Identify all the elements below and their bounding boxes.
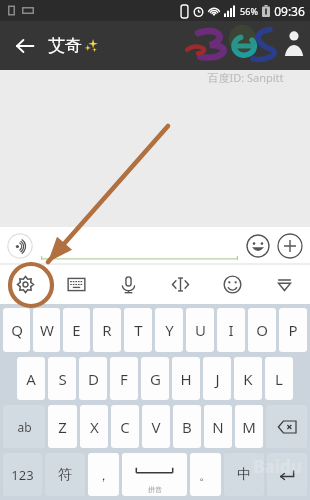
button[interactable]: G — [141, 357, 169, 400]
staticText: A — [26, 369, 36, 389]
staticText: 中 — [237, 466, 251, 484]
button[interactable]: C — [111, 405, 139, 448]
staticText: T — [134, 320, 143, 340]
button[interactable]: I — [217, 308, 245, 352]
staticText: Z — [58, 417, 67, 437]
staticText: F — [120, 369, 128, 389]
button[interactable]: E — [63, 308, 90, 352]
button[interactable]: Voice message — [7, 233, 33, 259]
staticText: W — [40, 320, 54, 340]
button[interactable]: 中 — [224, 453, 264, 496]
button[interactable]: V — [142, 405, 170, 448]
staticText: U — [195, 320, 206, 340]
button[interactable]: Keyboard — [51, 265, 102, 304]
button[interactable]: 123 — [3, 453, 42, 496]
button[interactable]: Emoji — [246, 234, 270, 258]
staticText: I — [228, 320, 234, 340]
button[interactable]: ， — [88, 453, 119, 496]
button[interactable]: J — [203, 357, 231, 400]
button[interactable]: Text edit — [154, 265, 206, 304]
staticText: 09:36 — [274, 3, 305, 19]
button[interactable]: More — [277, 233, 303, 259]
button[interactable]: B — [173, 405, 201, 448]
button[interactable]: O — [248, 308, 276, 352]
staticText: 艾奇 — [48, 35, 82, 56]
staticText: M — [242, 417, 256, 437]
staticText: B — [182, 417, 192, 437]
staticText: 符 — [58, 466, 72, 484]
button[interactable]: 。 — [190, 453, 221, 496]
staticText: 。 — [199, 467, 212, 483]
button[interactable]: Z — [48, 405, 77, 448]
button[interactable]: R — [93, 308, 121, 352]
staticText: J — [215, 369, 220, 389]
button[interactable]: P — [279, 308, 307, 352]
staticText: P — [288, 320, 298, 340]
staticText: ab — [17, 419, 32, 435]
button[interactable]: Voice input — [102, 265, 154, 304]
staticText: Y — [165, 320, 174, 340]
button[interactable]: M — [235, 405, 263, 448]
staticText: 拼音 — [148, 485, 162, 494]
button[interactable]: K — [234, 357, 262, 400]
button[interactable]: ab — [3, 405, 45, 448]
staticText: R — [102, 320, 112, 340]
staticText: 百度ID: Sanpitt — [207, 70, 284, 84]
staticText: C — [120, 417, 130, 437]
button[interactable]: Enter — [267, 453, 307, 496]
button[interactable]: A — [17, 357, 45, 400]
staticText: V — [151, 417, 161, 437]
staticText: S — [58, 369, 67, 389]
staticText: K — [243, 369, 253, 389]
staticText: D — [88, 369, 99, 389]
button[interactable]: D — [79, 357, 107, 400]
button[interactable]: U — [186, 308, 214, 352]
button[interactable]: Emoticons — [206, 265, 258, 304]
button[interactable]: F — [110, 357, 138, 400]
staticText: X — [90, 417, 99, 437]
button[interactable]: Back — [6, 27, 44, 65]
button[interactable]: S — [48, 357, 76, 400]
button[interactable]: Hide keyboard — [258, 265, 310, 304]
staticText: 123 — [11, 466, 34, 484]
button[interactable]: Settings — [0, 265, 51, 304]
staticText: L — [275, 369, 283, 389]
staticText: ， — [97, 467, 110, 483]
button[interactable]: N — [204, 405, 232, 448]
button[interactable]: L — [265, 357, 293, 400]
button[interactable]: H — [172, 357, 200, 400]
staticText: H — [180, 369, 192, 389]
button[interactable]: Space — [122, 453, 187, 496]
button[interactable]: Backspace — [266, 405, 307, 448]
staticText: O — [256, 320, 268, 340]
button[interactable]: T — [124, 308, 152, 352]
staticText: G — [150, 369, 161, 389]
button[interactable]: Q — [3, 308, 30, 352]
button[interactable] — [41, 227, 238, 265]
button[interactable]: Y — [155, 308, 183, 352]
button[interactable]: 符 — [45, 453, 85, 496]
staticText: E — [72, 320, 81, 340]
staticText: N — [212, 417, 224, 437]
staticText: Q — [11, 320, 23, 340]
staticText: 56% — [240, 5, 258, 17]
staticText: Baidu — [253, 455, 302, 478]
button[interactable]: X — [80, 405, 108, 448]
button[interactable]: W — [33, 308, 60, 352]
